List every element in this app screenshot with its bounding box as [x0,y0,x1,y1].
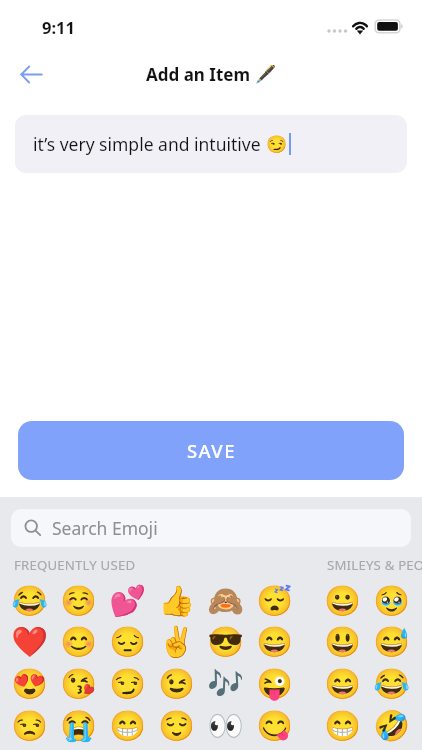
staticText: 😏 [109,667,146,702]
staticText: 💕 [109,584,146,619]
staticText: 9:11 [42,16,75,38]
staticText: 😒 [11,709,48,744]
button[interactable]: SAVE [18,421,404,480]
button[interactable]: 🥹 [367,581,416,622]
button[interactable]: 😭 [54,706,103,747]
staticText: Search Emoji [52,516,158,540]
staticText: 😔 [109,625,146,660]
button[interactable]: 🤣 [367,706,416,747]
button[interactable]: 😏 [103,664,152,705]
button[interactable]: Back [5,52,57,96]
button[interactable]: 😁 [103,706,152,747]
button[interactable]: 🙈 [201,581,250,622]
button[interactable]: 😜 [250,664,299,705]
button[interactable]: 💕 [103,581,152,622]
staticText: 😎 [207,625,244,660]
staticText: 😌 [158,709,195,744]
button[interactable]: 👀 [201,706,250,747]
button[interactable]: 🎶 [201,664,250,705]
staticText: Add an Item [146,63,255,86]
button[interactable]: it’s very simple and intuitive [15,115,407,173]
button[interactable]: 😌 [152,706,201,747]
staticText: 😉 [158,667,195,702]
staticText: it’s very simple and intuitive [33,132,266,156]
staticText: ☺️ [60,584,97,619]
staticText: 😍 [11,667,48,702]
staticText: 😄 [256,625,293,660]
button[interactable]: 😊 [54,622,103,663]
staticText: 👀 [207,709,244,744]
button[interactable]: 😍 [5,664,54,705]
button[interactable]: ❤️ [5,622,54,663]
staticText: FREQUENTLY USED [14,556,136,574]
staticText: 😂 [373,667,410,702]
staticText: 😁 [109,709,146,744]
staticText: 😴 [256,584,293,619]
staticText: 🥹 [373,584,410,619]
button[interactable]: 😒 [5,706,54,747]
staticText: ❤️ [11,625,48,660]
button[interactable]: 😔 [103,622,152,663]
button[interactable]: 😴 [250,581,299,622]
staticText: 😭 [60,709,97,744]
button[interactable]: ☺️ [54,581,103,622]
staticText: 🙈 [207,584,244,619]
staticText: 😜 [256,667,293,702]
button[interactable]: 😄 [318,664,367,705]
button[interactable]: 😘 [54,664,103,705]
button[interactable]: 😎 [201,622,250,663]
staticText: 😀 [324,584,361,619]
staticText: 😁 [324,709,361,744]
button[interactable]: 😂 [5,581,54,622]
staticText: 🖋 [255,64,277,84]
staticText: 😄 [324,667,361,702]
staticText: SMILEYS & PEOPLE [327,556,422,574]
staticText: 😊 [60,625,97,660]
staticText: 👍 [158,584,195,619]
staticText: 🤣 [373,709,410,744]
staticText: 😅 [373,625,410,660]
button[interactable]: 😀 [318,581,367,622]
staticText: 😘 [60,667,97,702]
button[interactable]: 😉 [152,664,201,705]
staticText: SAVE [187,438,236,463]
staticText: 😏 [266,134,288,154]
staticText: 😃 [324,625,361,660]
button[interactable]: ✌️ [152,622,201,663]
staticText: 😂 [11,584,48,619]
button[interactable]: 😁 [318,706,367,747]
button[interactable]: 😄 [250,622,299,663]
staticText: 🎶 [207,667,244,702]
button[interactable]: Search Emoji [11,509,411,547]
staticText: ✌️ [158,625,195,660]
button[interactable]: 👍 [152,581,201,622]
staticText: 😋 [256,709,293,744]
button[interactable]: 😂 [367,664,416,705]
button[interactable]: 😋 [250,706,299,747]
button[interactable]: 😅 [367,622,416,663]
button[interactable]: 😃 [318,622,367,663]
